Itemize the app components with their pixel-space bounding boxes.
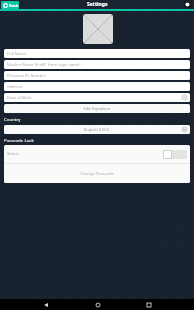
button[interactable]: Muslim Name (if diff. from legal name) (4, 60, 190, 69)
staticText: Full Name (7, 51, 27, 57)
button[interactable]: Personal ID Number (4, 71, 190, 80)
button[interactable]: Passcode status toggle (163, 150, 187, 159)
button[interactable]: Address (4, 82, 190, 91)
staticText: English (USA) (84, 127, 110, 133)
staticText: Change Passcode (80, 171, 115, 177)
staticText: Passcode Lock (4, 137, 34, 143)
button[interactable]: English (USA) (4, 125, 190, 134)
button[interactable]: Status (4, 145, 190, 163)
staticText: Address (7, 84, 23, 90)
staticText: Country (4, 116, 21, 122)
staticText: Muslim Name (if diff. from legal name) (7, 62, 81, 68)
button[interactable]: Change Passcode (4, 164, 190, 183)
staticText: Personal ID Number (7, 73, 47, 79)
button[interactable]: Recent apps (143, 299, 154, 310)
staticText: Date of Birth (7, 95, 32, 101)
staticText: Back (9, 3, 19, 8)
button[interactable]: Account (184, 1, 191, 8)
button[interactable]: Home (92, 299, 103, 310)
staticText: Status (7, 151, 20, 157)
button[interactable]: Profile photo (83, 14, 113, 44)
staticText: Add Signature (83, 106, 111, 112)
button[interactable]: Back (1, 1, 19, 9)
staticText: Settings (87, 1, 108, 8)
button[interactable]: Full Name (4, 49, 190, 58)
button[interactable]: Date of Birth (4, 93, 190, 102)
button[interactable]: Back (40, 299, 51, 310)
button[interactable]: Add Signature (4, 104, 190, 113)
